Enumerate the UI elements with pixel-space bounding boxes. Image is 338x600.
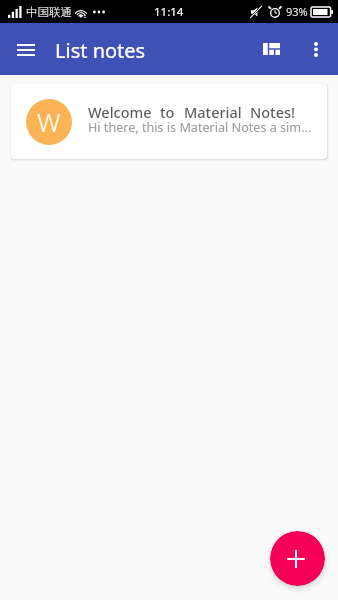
staticText: to xyxy=(160,102,175,122)
staticText: 11:14 xyxy=(154,4,184,20)
staticText: 中国联通 xyxy=(26,5,72,19)
button[interactable]: Change layout xyxy=(250,28,292,70)
staticText: 93% xyxy=(286,4,308,19)
staticText: Hi there, this is Material Notes a sim..… xyxy=(88,119,312,136)
staticText: W xyxy=(37,104,61,139)
staticText: List notes xyxy=(55,37,146,64)
button[interactable]: Add note xyxy=(270,531,325,586)
button[interactable]: More options xyxy=(296,29,336,69)
staticText: Welcome xyxy=(88,102,152,122)
staticText: Material xyxy=(184,102,242,122)
button[interactable]: W xyxy=(11,84,327,159)
button[interactable]: Open navigation drawer xyxy=(5,29,47,71)
staticText: Notes! xyxy=(250,102,295,122)
